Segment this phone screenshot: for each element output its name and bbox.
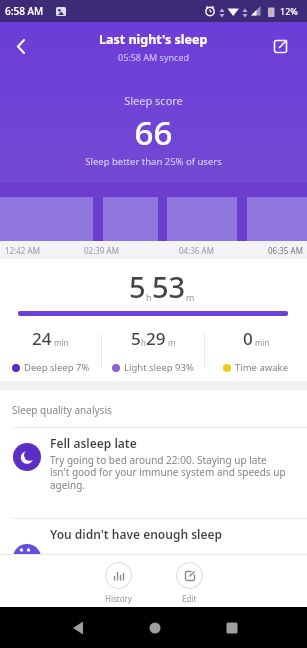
- button[interactable]: [58, 608, 98, 648]
- staticText: Time awake: [235, 361, 289, 374]
- staticText: m: [166, 337, 176, 348]
- button[interactable]: History: [105, 562, 132, 604]
- staticText: 06:35 AM: [268, 245, 303, 256]
- staticText: h: [141, 337, 146, 348]
- staticText: m: [186, 291, 195, 303]
- staticText: Sleep quality analysis: [12, 403, 112, 417]
- button[interactable]: Fell asleep late: [13, 435, 297, 492]
- staticText: Sleep score: [0, 93, 307, 108]
- staticText: 66: [0, 110, 307, 155]
- staticText: 12%: [280, 5, 298, 17]
- button[interactable]: [212, 608, 252, 648]
- staticText: 12:42 AM: [5, 245, 40, 256]
- staticText: 24: [32, 327, 52, 350]
- staticText: You didn't have enough sleep: [50, 526, 223, 542]
- button[interactable]: Edit: [176, 562, 203, 604]
- staticText: Deep sleep 7%: [24, 361, 90, 374]
- staticText: 53: [152, 267, 186, 306]
- staticText: Try going to bed around 22:00. Staying u…: [50, 453, 286, 492]
- button[interactable]: You didn't have enough sleep: [13, 523, 295, 554]
- staticText: 05:58 AM synced: [118, 51, 189, 63]
- staticText: 5: [129, 267, 146, 306]
- staticText: 0: [243, 327, 253, 350]
- button[interactable]: [265, 31, 295, 61]
- staticText: Sleep better than 25% of users: [0, 155, 307, 168]
- staticText: Fell asleep late: [50, 435, 137, 451]
- button[interactable]: [6, 31, 36, 61]
- staticText: Edit: [182, 593, 197, 604]
- button[interactable]: [135, 608, 175, 648]
- staticText: min: [52, 337, 69, 348]
- staticText: 02:39 AM: [84, 245, 119, 256]
- staticText: 5: [131, 327, 141, 350]
- staticText: min: [253, 337, 270, 348]
- staticText: History: [105, 593, 132, 604]
- staticText: 29: [146, 327, 166, 350]
- staticText: Light sleep 93%: [124, 361, 194, 374]
- staticText: h: [146, 291, 152, 303]
- staticText: 6:58 AM: [5, 4, 44, 18]
- staticText: 04:36 AM: [179, 245, 214, 256]
- staticText: Last night's sleep: [99, 31, 208, 48]
